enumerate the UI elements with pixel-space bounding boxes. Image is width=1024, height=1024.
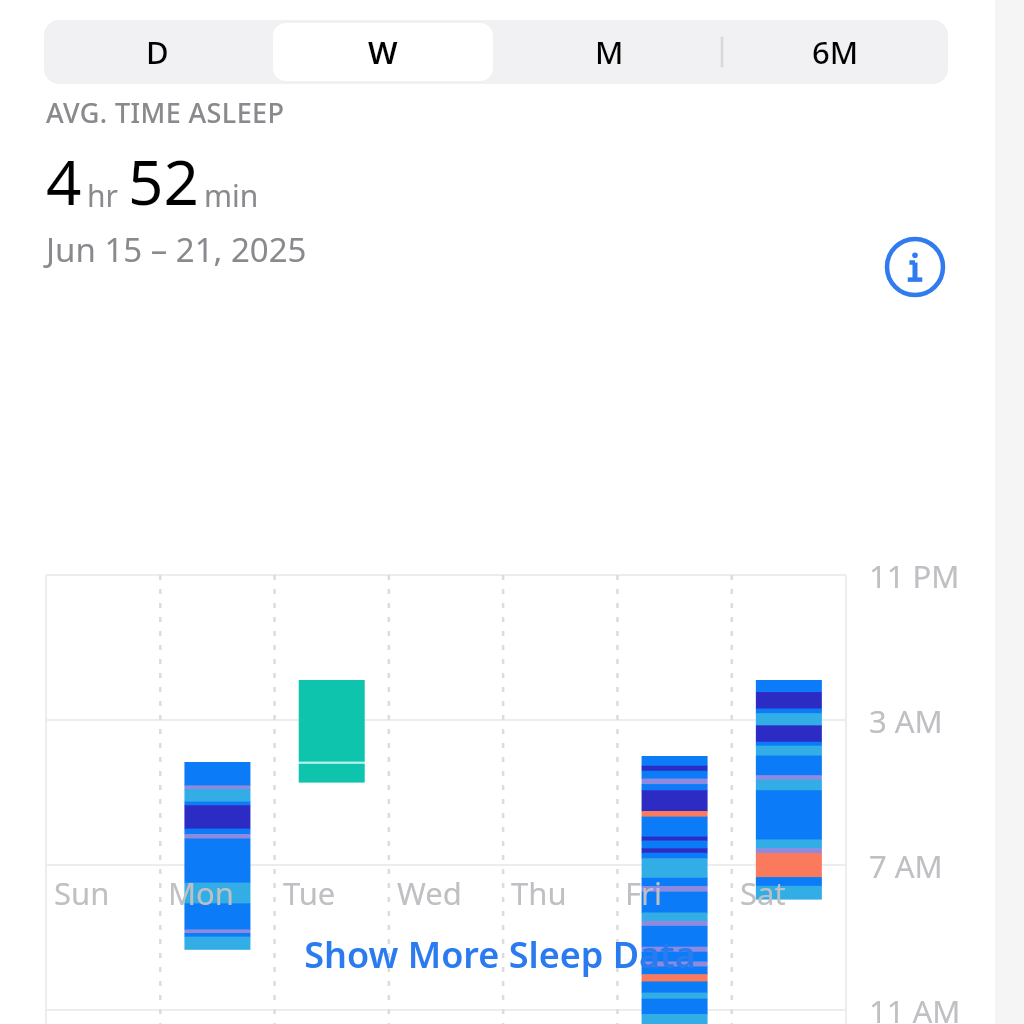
staticText: 11 PM xyxy=(869,555,960,597)
staticText: Jun 15 – 21, 2025 xyxy=(46,227,307,272)
staticText: Tue xyxy=(283,872,336,914)
staticText: hr xyxy=(87,175,118,216)
staticText: Thu xyxy=(511,872,567,914)
staticText: 11 AM xyxy=(869,990,961,1024)
staticText: 7 AM xyxy=(869,845,943,887)
staticText: Fri xyxy=(625,872,662,914)
button[interactable]: D xyxy=(47,23,267,81)
button[interactable]: M xyxy=(499,23,719,81)
staticText: 4 xyxy=(46,139,82,223)
staticText: Sun xyxy=(54,872,110,914)
button[interactable]: W xyxy=(273,23,493,81)
staticText: 6M xyxy=(812,31,859,73)
staticText: Sat xyxy=(740,872,786,914)
staticText: 3 AM xyxy=(869,700,943,742)
button[interactable]: Show More Sleep Data xyxy=(0,930,1024,979)
button[interactable]: About time asleep xyxy=(884,236,946,298)
staticText: 52 xyxy=(128,139,199,223)
staticText: Wed xyxy=(397,872,462,914)
staticText: M xyxy=(595,31,624,73)
staticText: min xyxy=(204,175,259,216)
staticText: D xyxy=(146,31,169,73)
staticText: Mon xyxy=(168,872,235,914)
staticText: Show More Sleep Data xyxy=(304,930,696,979)
staticText: AVG. TIME ASLEEP xyxy=(46,94,285,131)
button[interactable]: 6M xyxy=(725,23,945,81)
staticText: W xyxy=(368,31,398,73)
